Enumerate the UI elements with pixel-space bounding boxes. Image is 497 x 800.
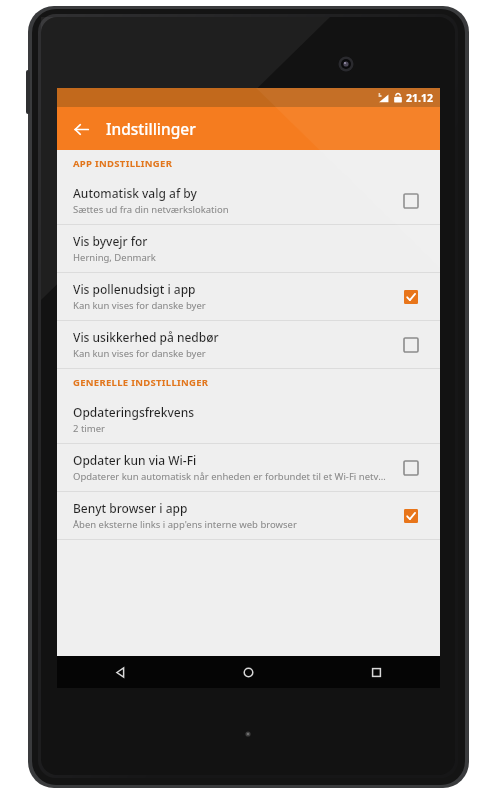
staticText: Opdateringsfrekvens — [73, 404, 195, 420]
button[interactable]: Opdateringsfrekvens — [57, 396, 440, 443]
button[interactable]: Recent apps — [312, 656, 440, 688]
button[interactable]: Vis usikkerhed på nedbør — [396, 330, 426, 360]
button[interactable]: Benyt browser i app — [57, 492, 440, 539]
staticText: 2 timer — [73, 422, 105, 435]
staticText: 21.12 — [406, 91, 433, 105]
button[interactable]: Back — [65, 113, 97, 145]
staticText: APP INDSTILLINGER — [73, 157, 173, 170]
staticText: Indstillinger — [106, 118, 196, 139]
staticText: Vis byvejr for — [73, 233, 148, 249]
staticText: GENERELLE INDSTILLINGER — [73, 376, 209, 389]
button[interactable]: Opdater kun via Wi-Fi — [57, 444, 440, 491]
button[interactable]: Vis usikkerhed på nedbør — [57, 321, 440, 368]
staticText: Kan kun vises for danske byer — [73, 347, 206, 360]
staticText: Opdater kun via Wi-Fi — [73, 452, 197, 468]
button[interactable]: Back — [57, 656, 184, 688]
button[interactable]: Benyt browser i app — [396, 501, 426, 531]
staticText: Sættes ud fra din netværkslokation — [73, 203, 229, 216]
button[interactable]: Vis pollenudsigt i app — [396, 282, 426, 312]
staticText: Automatisk valg af by — [73, 185, 197, 201]
staticText: Kan kun vises for danske byer — [73, 299, 206, 312]
staticText: Vis usikkerhed på nedbør — [73, 329, 219, 345]
button[interactable]: Home — [184, 656, 312, 688]
staticText: Opdaterer kun automatisk når enheden er … — [73, 470, 386, 483]
button[interactable]: Opdater kun via Wi-Fi — [396, 453, 426, 483]
staticText: Herning, Denmark — [73, 251, 156, 264]
button[interactable]: Automatisk valg af by — [57, 177, 440, 224]
staticText: Vis pollenudsigt i app — [73, 281, 196, 297]
button[interactable]: Automatisk valg af by — [396, 186, 426, 216]
staticText: Åben eksterne links i app'ens interne we… — [73, 518, 297, 531]
button[interactable]: Vis byvejr for — [57, 225, 440, 272]
staticText: Benyt browser i app — [73, 500, 188, 516]
button[interactable]: Vis pollenudsigt i app — [57, 273, 440, 320]
